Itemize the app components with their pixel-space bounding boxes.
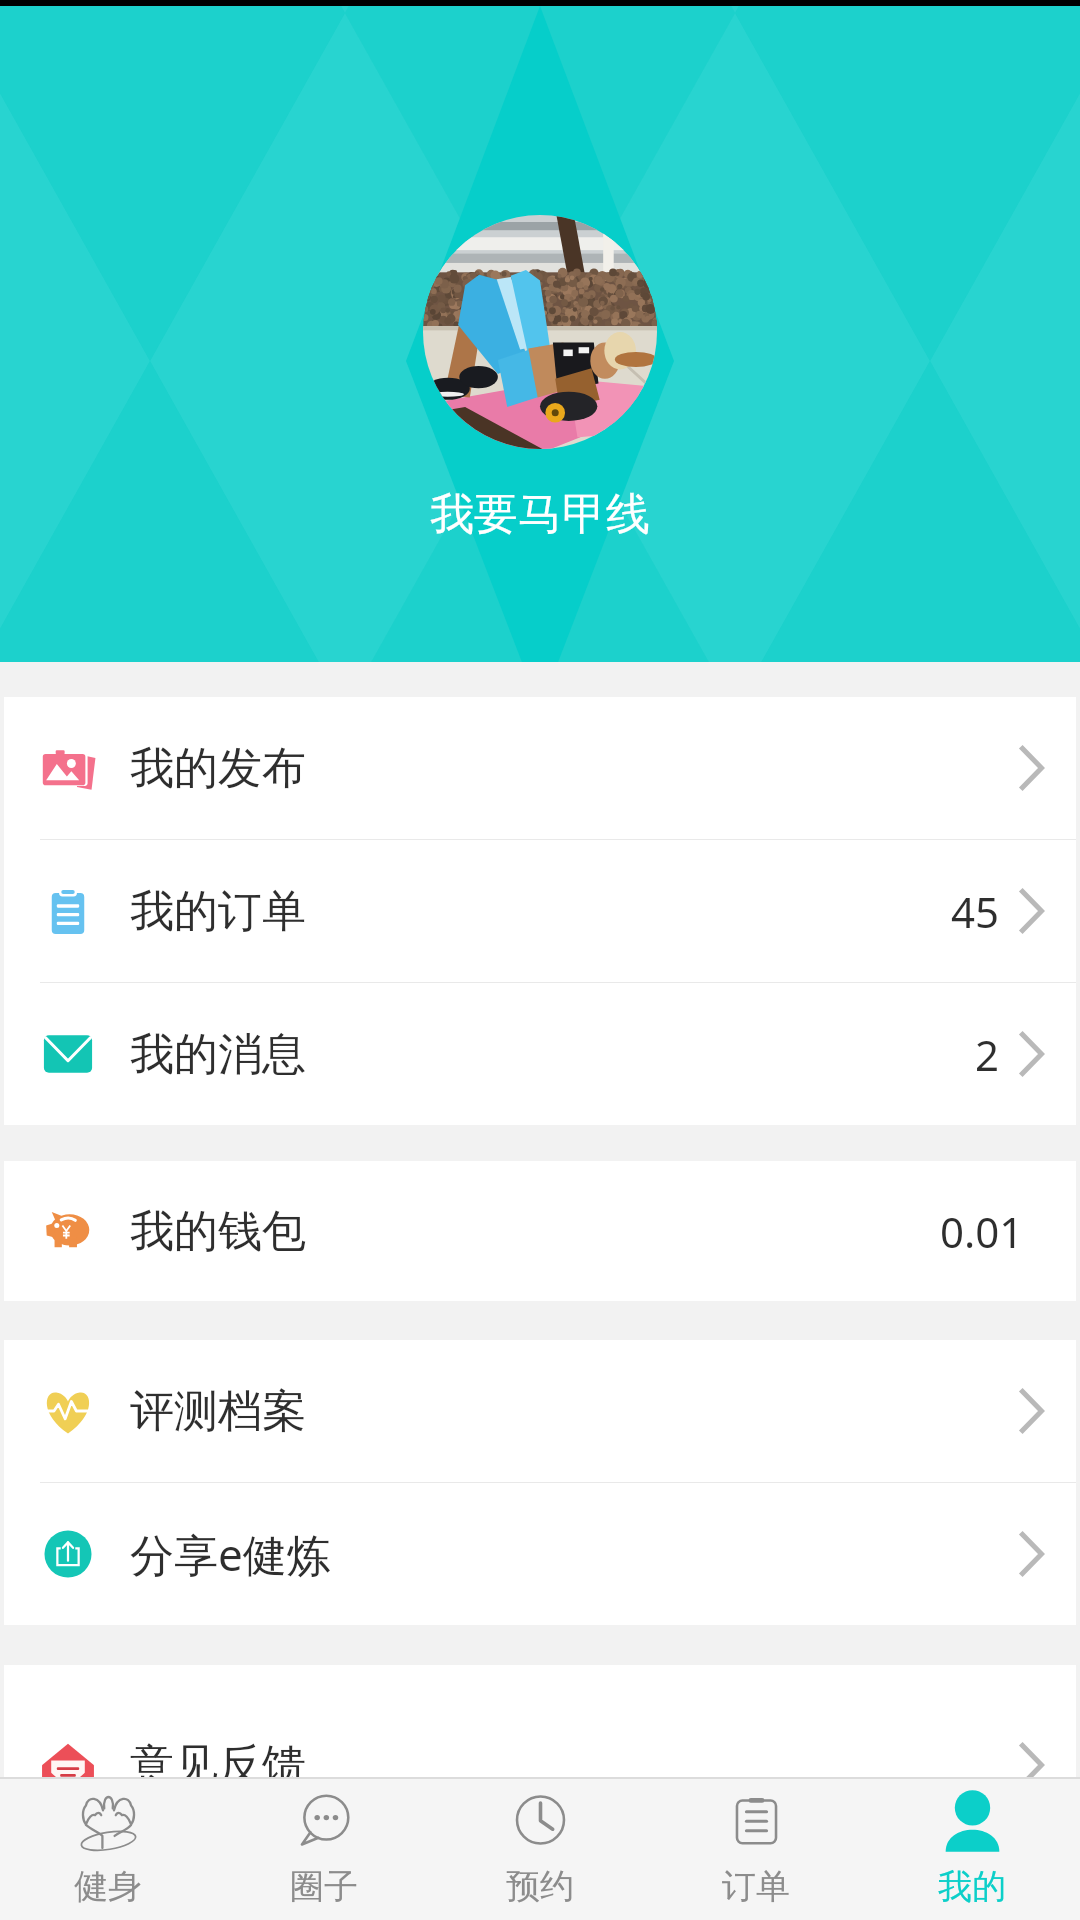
staticText: 我的订单 — [130, 884, 306, 939]
staticText: 意见反馈 — [130, 1738, 306, 1793]
staticText: 我的消息 — [130, 1027, 306, 1082]
button[interactable]: 我的订单 — [4, 840, 1076, 982]
staticText: 0.01 — [940, 1203, 1024, 1260]
button[interactable]: 健身 — [0, 1779, 216, 1920]
button[interactable]: Profile photo — [423, 215, 657, 449]
button[interactable]: 预约 — [432, 1779, 648, 1920]
button[interactable]: 我的消息 — [4, 983, 1076, 1125]
staticText: 我的 — [938, 1865, 1006, 1908]
staticText: 健身 — [74, 1865, 142, 1908]
button[interactable]: 订单 — [648, 1779, 864, 1920]
staticText: 我要马甲线 — [430, 487, 650, 542]
button[interactable]: 分享e健炼 — [4, 1483, 1076, 1625]
staticText: 评测档案 — [130, 1384, 306, 1439]
staticText: 我的钱包 — [130, 1204, 306, 1259]
button[interactable]: 我的发布 — [4, 697, 1076, 839]
button[interactable]: 圈子 — [216, 1779, 432, 1920]
staticText: 分享e健炼 — [130, 1524, 331, 1584]
staticText: 我的发布 — [130, 741, 306, 796]
staticText: 订单 — [722, 1865, 790, 1908]
staticText: 2 — [975, 1026, 1000, 1083]
staticText: 45 — [951, 883, 1000, 940]
button[interactable]: 评测档案 — [4, 1340, 1076, 1482]
staticText: 圈子 — [290, 1865, 358, 1908]
staticText: 预约 — [506, 1865, 574, 1908]
button[interactable]: 我的钱包 — [4, 1161, 1076, 1301]
button[interactable]: 我的 — [864, 1779, 1080, 1920]
button[interactable]: 意见反馈 — [4, 1694, 1076, 1836]
